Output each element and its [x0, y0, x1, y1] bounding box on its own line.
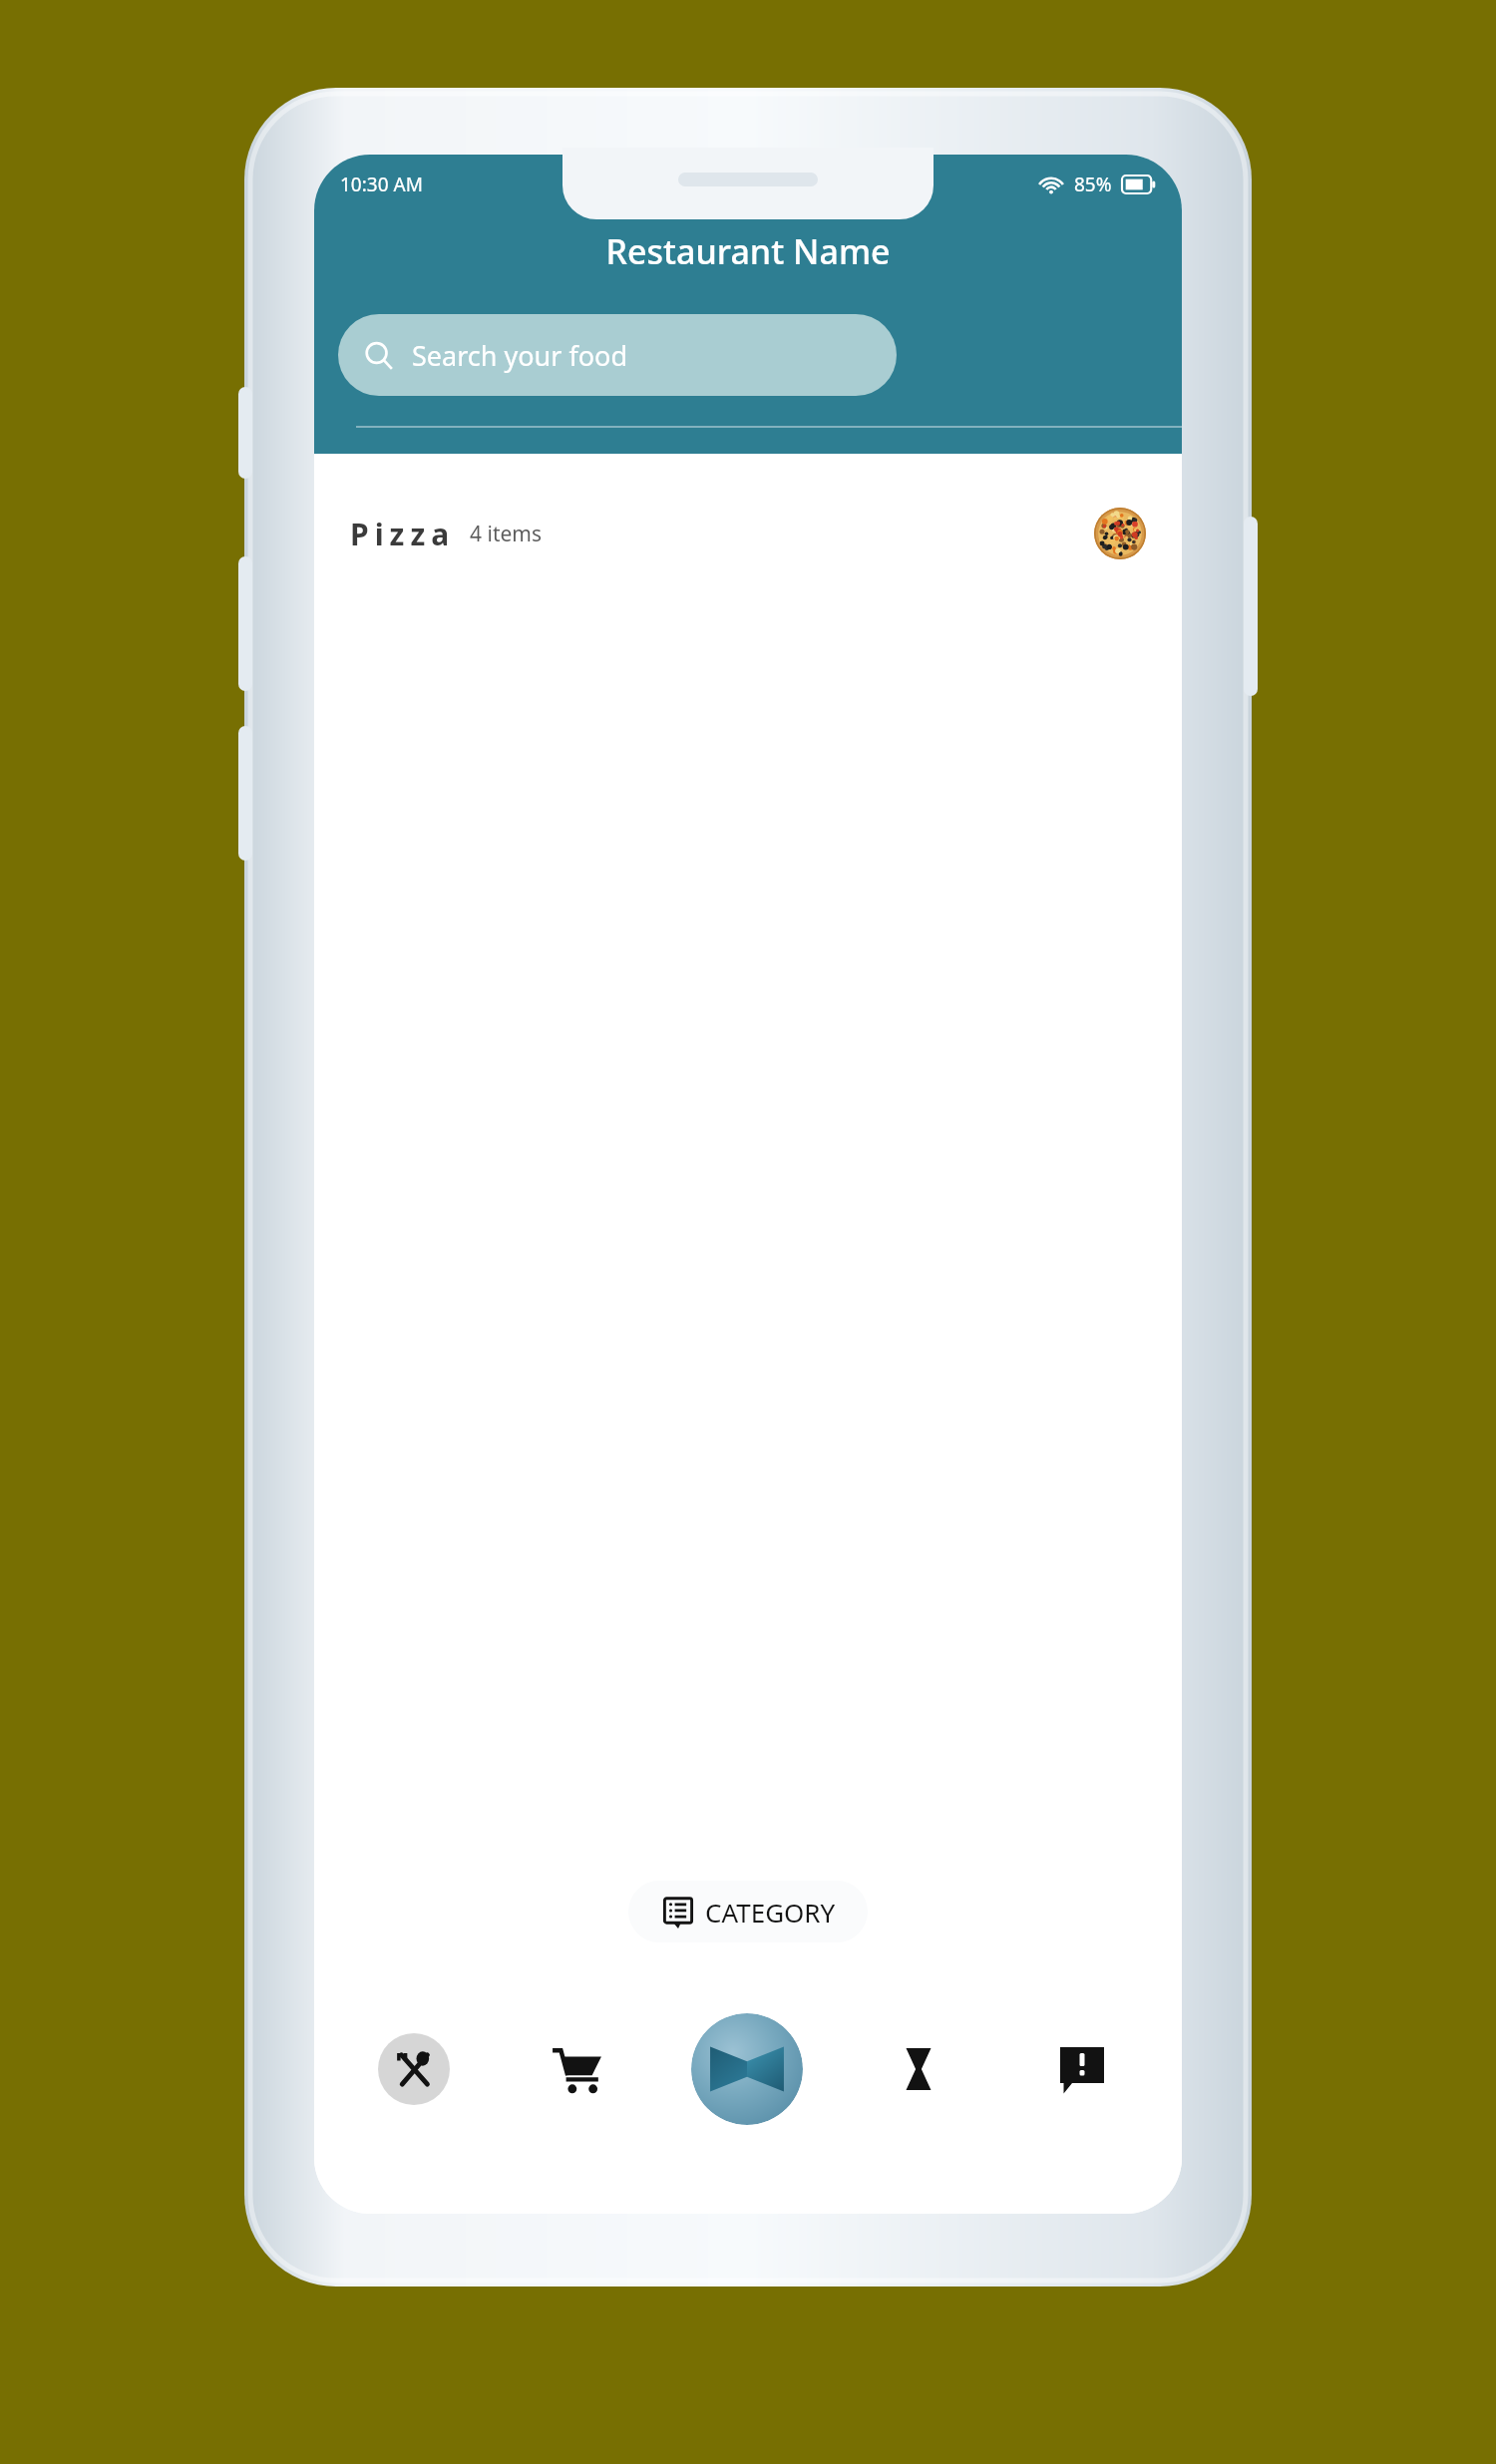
button[interactable]: History: [837, 1994, 1000, 2144]
button[interactable]: Pizza: [1094, 508, 1146, 559]
button[interactable]: Pizza: [314, 494, 1182, 573]
staticText: Restaurant Name: [605, 228, 891, 274]
staticText: CATEGORY: [705, 1895, 836, 1930]
button[interactable]: Menu: [332, 1994, 495, 2144]
staticText: Search your food: [412, 337, 627, 374]
button[interactable]: Search your food: [338, 314, 897, 396]
staticText: Pizza: [350, 514, 456, 554]
staticText: 4 items: [470, 520, 543, 548]
staticText: 85%: [1074, 172, 1112, 197]
button[interactable]: CATEGORY: [628, 1881, 868, 1942]
staticText: 10:30 AM: [340, 172, 423, 197]
button[interactable]: Alerts: [1000, 1994, 1164, 2144]
button[interactable]: Cart: [495, 1994, 657, 2144]
button[interactable]: Orders: [691, 2013, 803, 2125]
